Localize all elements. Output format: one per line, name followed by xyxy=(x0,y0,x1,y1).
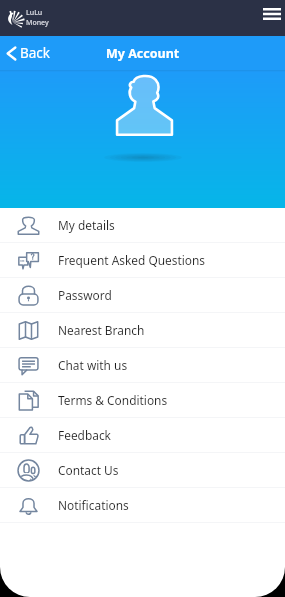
button[interactable]: Terms & Conditions xyxy=(0,383,285,418)
button[interactable]: Password xyxy=(0,278,285,313)
staticText: Money xyxy=(26,18,49,28)
staticText: Feedback xyxy=(58,427,111,443)
staticText: Nearest Branch xyxy=(58,322,145,338)
staticText: Terms & Conditions xyxy=(58,392,168,408)
staticText: Contact Us xyxy=(58,462,119,478)
staticText: My details xyxy=(58,217,115,233)
staticText: Frequent Asked Questions xyxy=(58,252,206,268)
staticText: Notifications xyxy=(58,497,129,513)
staticText: Password xyxy=(58,287,112,303)
button[interactable]: Open navigation menu xyxy=(259,0,285,27)
button[interactable]: Notifications xyxy=(0,488,285,523)
staticText: My Account xyxy=(106,45,180,62)
button[interactable]: My details xyxy=(0,208,285,243)
button[interactable]: Nearest Branch xyxy=(0,313,285,348)
staticText: Chat with us xyxy=(58,357,128,373)
button[interactable]: Chat with us xyxy=(0,348,285,383)
staticText: LuLu xyxy=(26,8,43,18)
button[interactable]: Contact Us xyxy=(0,453,285,488)
staticText: Back xyxy=(20,44,51,62)
button[interactable]: Back xyxy=(0,36,61,70)
button[interactable]: Frequent Asked Questions xyxy=(0,243,285,278)
button[interactable]: Feedback xyxy=(0,418,285,453)
